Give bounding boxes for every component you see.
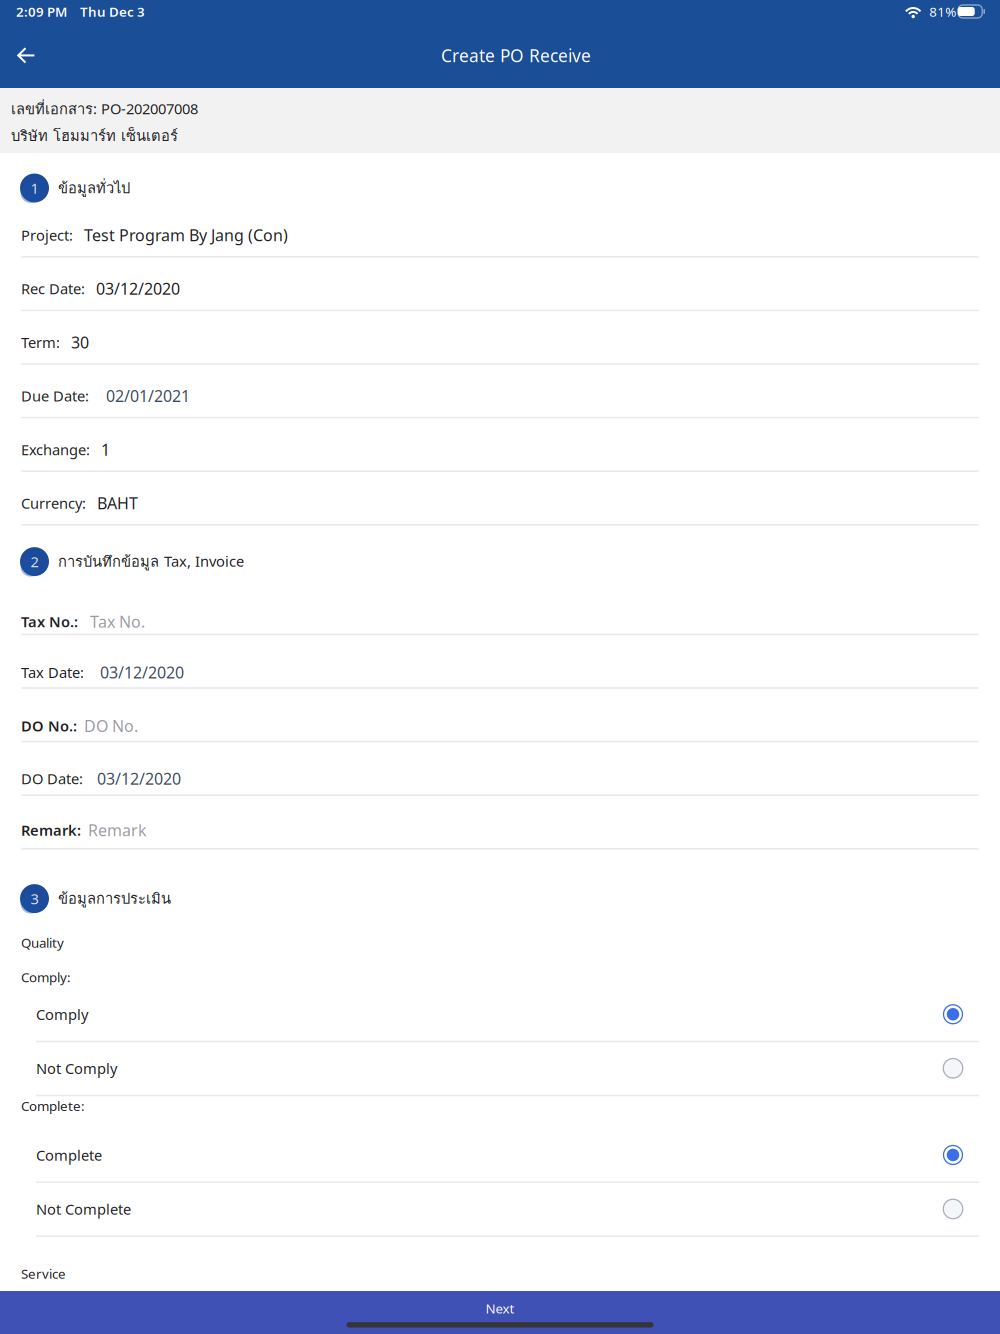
- staticText: Service: [21, 1265, 66, 1282]
- staticText: DO Date:: [21, 769, 83, 788]
- staticText: การบันทึกข้อมูล Tax, Invoice: [58, 550, 244, 573]
- button[interactable]: Comply: [0, 988, 1000, 1041]
- staticText: Not Complete: [36, 1199, 131, 1219]
- staticText: Exchange:: [21, 440, 90, 459]
- staticText: 1: [30, 178, 38, 198]
- staticText: 30: [71, 332, 89, 353]
- button[interactable]: Back: [0, 33, 48, 78]
- staticText: เลขที่เอกสาร: PO-202007008: [11, 98, 198, 120]
- button[interactable]: Not Comply: [0, 1042, 1000, 1095]
- staticText: 3: [30, 889, 38, 908]
- staticText: Complete: [36, 1145, 102, 1165]
- staticText: บริษัท โฮมมาร์ท เซ็นเตอร์: [11, 124, 178, 147]
- staticText: Tax No.: [90, 611, 145, 632]
- staticText: Remark:: [21, 820, 81, 840]
- staticText: DO No.: [84, 715, 138, 736]
- staticText: 1: [101, 439, 110, 460]
- staticText: Due Date:: [21, 386, 89, 406]
- staticText: 81%: [929, 3, 956, 20]
- staticText: ข้อมูลการประเมิน: [58, 887, 171, 910]
- staticText: ข้อมูลทั่วไป: [58, 177, 130, 199]
- staticText: 2: [30, 552, 38, 571]
- staticText: Currency:: [21, 493, 86, 513]
- staticText: Remark: [88, 819, 147, 841]
- staticText: 03/12/2020: [97, 768, 181, 789]
- staticText: BAHT: [97, 492, 138, 514]
- staticText: Tax No.:: [21, 612, 78, 631]
- staticText: Test Program By Jang (Con): [84, 224, 288, 246]
- staticText: Comply:: [21, 968, 71, 986]
- staticText: DO No.:: [21, 716, 77, 736]
- staticText: 03/12/2020: [100, 662, 184, 683]
- staticText: Rec Date:: [21, 279, 85, 298]
- staticText: 03/12/2020: [96, 278, 180, 299]
- staticText: Next: [485, 1299, 514, 1317]
- button[interactable]: Next: [0, 1291, 1000, 1334]
- button[interactable]: Complete: [0, 1128, 1000, 1181]
- staticText: 2:09 PM: [16, 3, 67, 20]
- button[interactable]: Not Complete: [0, 1182, 1000, 1235]
- staticText: Project:: [21, 225, 73, 245]
- staticText: Thu Dec 3: [80, 3, 145, 20]
- staticText: Term:: [21, 332, 60, 352]
- staticText: Complete:: [21, 1097, 85, 1115]
- staticText: Create PO Receive: [441, 44, 591, 67]
- staticText: Tax Date:: [21, 662, 84, 682]
- staticText: 02/01/2021: [106, 385, 190, 406]
- staticText: Comply: [36, 1004, 88, 1024]
- staticText: Not Comply: [36, 1058, 117, 1078]
- staticText: Quality: [21, 934, 64, 951]
